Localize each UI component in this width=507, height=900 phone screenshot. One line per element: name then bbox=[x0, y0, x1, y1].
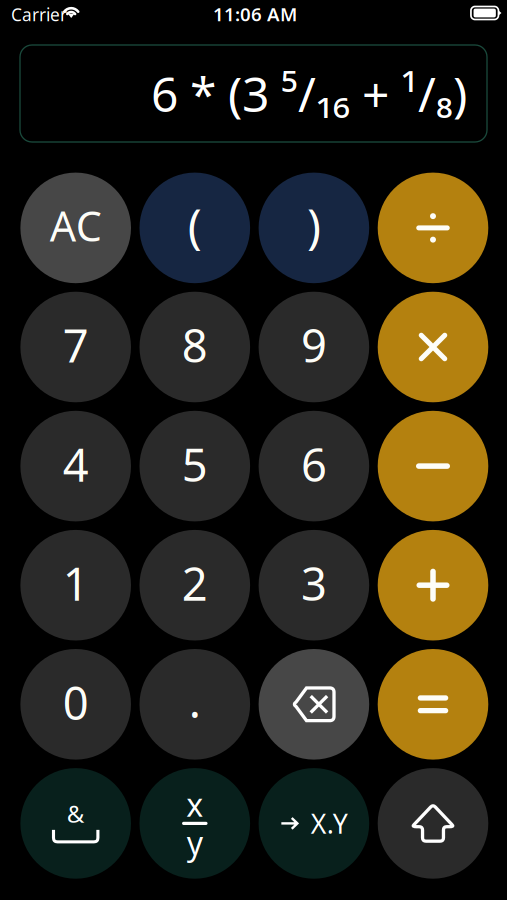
button[interactable]: ( bbox=[139, 173, 250, 283]
staticText: ( bbox=[188, 194, 202, 256]
staticText: 0 bbox=[63, 672, 89, 732]
staticText: Carrier bbox=[11, 3, 67, 26]
staticText: X.Y bbox=[311, 806, 348, 841]
staticText: & bbox=[67, 797, 85, 829]
staticText: . bbox=[189, 670, 201, 730]
button[interactable]: 5 bbox=[139, 411, 250, 521]
button[interactable]: 8 bbox=[139, 292, 250, 402]
button[interactable]: 0 bbox=[20, 649, 131, 760]
staticText: 6 * (3 ⁵/₁₆ + ¹/₈) bbox=[151, 62, 467, 125]
button[interactable]: ) bbox=[259, 173, 369, 283]
button[interactable]: 3 bbox=[259, 530, 369, 640]
staticText: x bbox=[186, 783, 203, 826]
button[interactable]: Delete bbox=[259, 649, 369, 760]
button[interactable]: 7 bbox=[20, 292, 131, 402]
staticText: 2 bbox=[182, 553, 208, 613]
staticText: 4 bbox=[63, 434, 89, 494]
staticText: 11:06 AM bbox=[213, 1, 297, 26]
staticText: 9 bbox=[301, 315, 327, 375]
button[interactable]: AC bbox=[20, 173, 131, 283]
staticText: AC bbox=[50, 198, 102, 253]
button[interactable]: 2 bbox=[139, 530, 250, 640]
staticText: 6 bbox=[301, 434, 327, 494]
button[interactable]: Divide bbox=[378, 173, 488, 283]
button[interactable]: Convert to X.Y bbox=[259, 768, 369, 879]
button[interactable]: 4 bbox=[20, 411, 131, 521]
button[interactable]: Equals bbox=[378, 649, 488, 760]
staticText: 5 bbox=[182, 434, 208, 494]
staticText: y bbox=[187, 821, 203, 864]
button[interactable]: Multiply bbox=[378, 292, 488, 402]
button[interactable]: 6 bbox=[259, 411, 369, 521]
button[interactable]: . bbox=[139, 649, 250, 760]
button[interactable]: Fraction x over y bbox=[139, 768, 250, 879]
staticText: 1 bbox=[63, 553, 89, 613]
staticText: ) bbox=[307, 194, 321, 256]
staticText: 7 bbox=[63, 315, 89, 375]
button[interactable]: 9 bbox=[259, 292, 369, 402]
button[interactable]: Minus bbox=[378, 411, 488, 521]
staticText: 8 bbox=[182, 315, 208, 375]
button[interactable]: Shift bbox=[378, 768, 488, 879]
button[interactable]: Ampersand and space bbox=[20, 768, 131, 879]
button[interactable]: 1 bbox=[20, 530, 131, 640]
button[interactable]: Plus bbox=[378, 530, 488, 640]
staticText: 3 bbox=[301, 553, 327, 613]
